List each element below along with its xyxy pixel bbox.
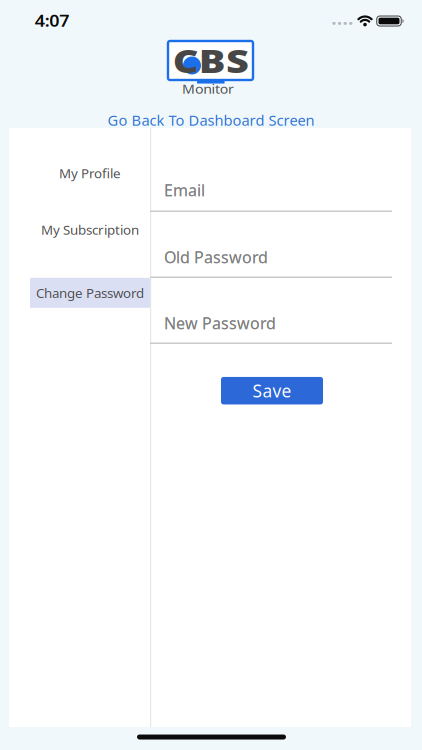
staticText: Go Back To Dashboard Screen [107, 110, 314, 130]
staticText: 4:07 [36, 10, 67, 31]
staticText: Monitor [186, 81, 230, 97]
staticText: Old Password [164, 246, 268, 268]
button[interactable]: My Subscription [30, 214, 150, 244]
textField[interactable]: Old Password [164, 246, 392, 268]
button[interactable]: Change Password [30, 278, 150, 308]
staticText: CBS [180, 39, 241, 82]
button[interactable]: Save [221, 377, 323, 404]
button[interactable]: Go Back To Dashboard Screen [107, 110, 314, 130]
staticText: New Password [164, 312, 276, 334]
staticText: Change Password [36, 284, 144, 302]
staticText: Save [252, 379, 291, 402]
staticText: Email [164, 179, 205, 201]
textField[interactable]: New Password [164, 312, 392, 334]
staticText: Email [164, 179, 205, 201]
staticText: My Subscription [41, 221, 139, 238]
staticText: Old Password [164, 246, 268, 268]
staticText: New Password [164, 312, 276, 334]
staticText: My Profile [59, 164, 121, 182]
button[interactable]: My Profile [30, 158, 150, 188]
textField[interactable]: Email [164, 179, 392, 201]
